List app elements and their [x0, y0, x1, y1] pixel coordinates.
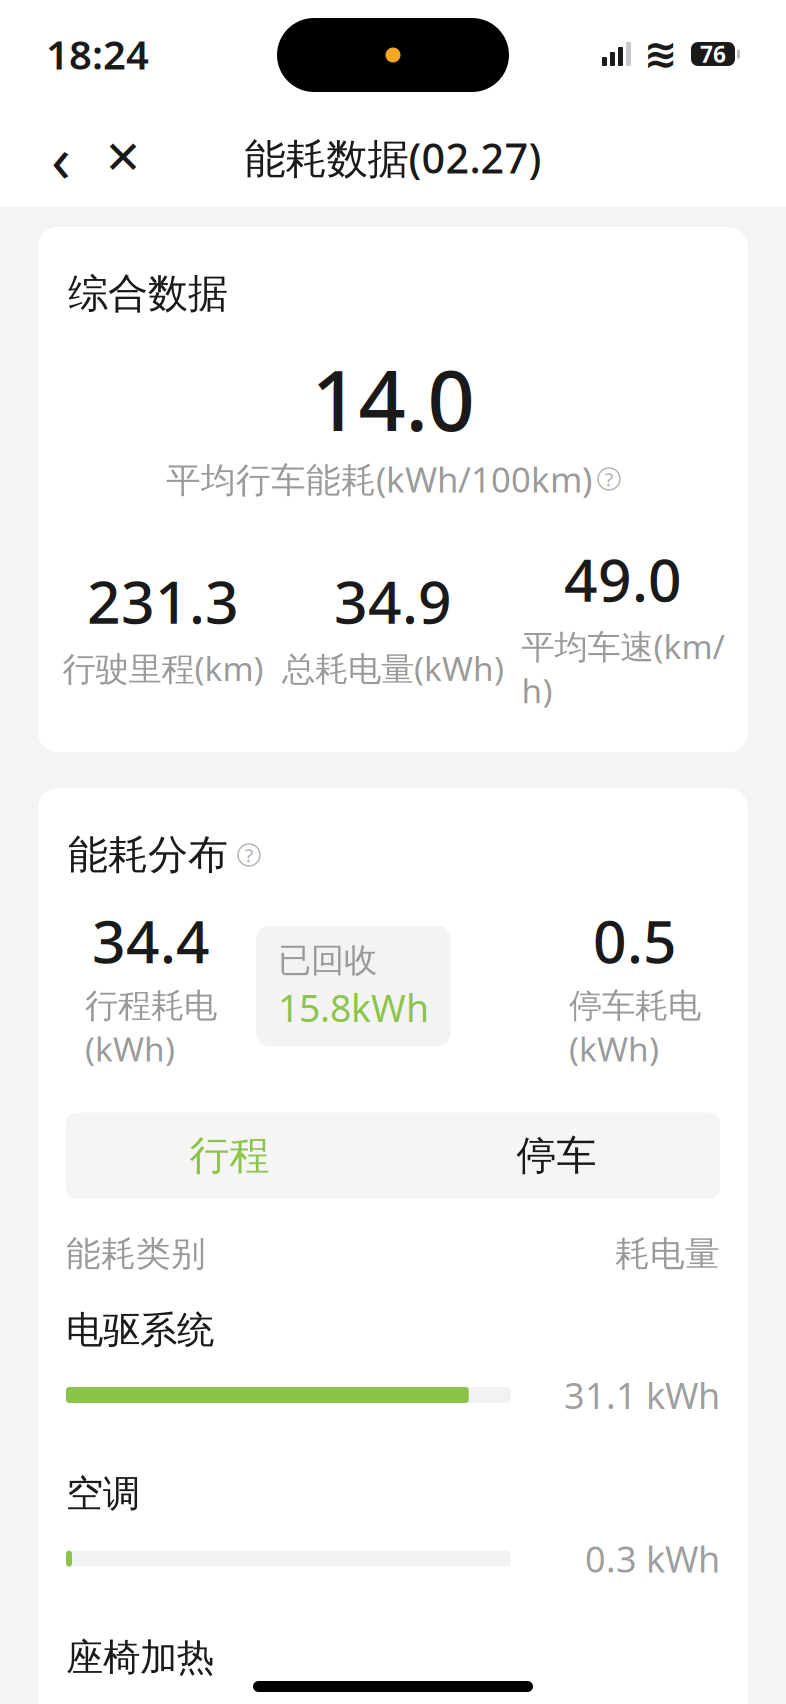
- staticText: 能耗分布: [68, 830, 228, 879]
- staticText: 0.3 kWh: [585, 1535, 720, 1582]
- button[interactable]: 停车: [393, 1113, 720, 1199]
- staticText: 76: [700, 39, 726, 69]
- staticText: 空调: [66, 1471, 140, 1517]
- staticText: 平均行车能耗(kWh/100km): [166, 456, 592, 502]
- staticText: 31.1 kWh: [564, 1371, 720, 1419]
- staticText: 18:24: [46, 27, 149, 80]
- button[interactable]: Back: [30, 126, 92, 188]
- staticText: 34.9: [334, 562, 452, 640]
- staticText: 34.4: [92, 901, 210, 979]
- staticText: 15.8kWh: [278, 983, 429, 1032]
- staticText: 能耗数据(02.27): [244, 130, 541, 185]
- staticText: ≋: [644, 31, 678, 77]
- staticText: 停车: [516, 1131, 596, 1180]
- staticText: 座椅加热: [66, 1634, 214, 1680]
- staticText: 行驶里程(km): [62, 646, 263, 690]
- staticText: 49.0: [564, 540, 682, 618]
- staticText: 综合数据: [68, 269, 228, 318]
- staticText: 耗电量: [615, 1233, 720, 1275]
- staticText: 电驱系统: [66, 1307, 214, 1353]
- staticText: ?: [605, 466, 613, 491]
- staticText: 能耗类别: [66, 1233, 206, 1275]
- staticText: ✕: [104, 132, 142, 183]
- staticText: 行程耗电(kWh): [85, 985, 217, 1071]
- staticText: 平均车速(km/h): [521, 624, 724, 712]
- staticText: 0.5: [593, 901, 677, 979]
- staticText: 231.3: [87, 562, 239, 640]
- staticText: 已回收: [278, 940, 377, 981]
- staticText: 停车耗电(kWh): [569, 985, 701, 1071]
- button[interactable]: 行程: [66, 1113, 393, 1199]
- staticText: 14.0: [311, 344, 474, 454]
- staticText: ?: [245, 843, 253, 867]
- button[interactable]: Close: [92, 126, 154, 188]
- staticText: ‹: [51, 115, 71, 200]
- staticText: 总耗电量(kWh): [282, 646, 504, 690]
- staticText: 行程: [189, 1131, 269, 1180]
